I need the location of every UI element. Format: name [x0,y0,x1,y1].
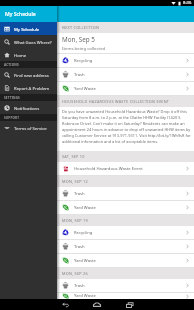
staticText: My Schedule [14,26,40,32]
staticText: SUPPORT [4,116,20,120]
button[interactable]: Find new address [0,68,57,81]
staticText: Trash [74,244,185,250]
staticText: What Goes Where? [14,39,52,45]
staticText: Yard Waste [74,293,185,299]
button[interactable]: Report A Problem [0,81,57,94]
staticText: SETTINGS [4,96,20,100]
staticText: Home [14,52,27,58]
button[interactable]: Back [60,299,71,310]
staticText: Notifications [14,105,40,111]
staticText: Report A Problem [14,85,50,91]
button[interactable]: Home [91,299,102,310]
button[interactable]: Notifications [0,101,57,114]
button[interactable]: Trash [0,279,194,292]
button[interactable]: Yard Waste [0,82,194,95]
staticText: MON, SEP 26 [62,271,88,276]
staticText: Do you have unwanted Household Hazardous… [62,109,191,144]
staticText: Yard Waste [74,205,185,211]
button[interactable]: Terms of Service [0,121,57,134]
staticText: Yard Waste [74,258,185,264]
staticText: ACTIONS [4,63,19,67]
staticText: Terms of Service [14,125,47,131]
staticText: 8:36 [183,0,192,6]
button[interactable]: Yard Waste [0,293,194,299]
staticText: Yard Waste [74,86,185,92]
button[interactable]: Recycling [0,54,194,67]
staticText: Mon, Sep 5 [62,35,95,44]
button[interactable]: Recent apps [124,299,135,310]
staticText: NEXT COLLECTION [62,25,100,30]
staticText: Household Hazardous Waste Event [74,166,185,172]
staticText: Trash [74,191,185,197]
button[interactable]: Yard Waste [0,201,194,214]
staticText: Find new address [14,72,49,78]
staticText: SAT, SEP 10 [62,154,85,159]
staticText: Trash [74,283,185,289]
staticText: Trash [74,72,185,78]
button[interactable]: Yard Waste [0,254,194,267]
button[interactable]: Trash [0,68,194,81]
staticText: My Schedule [5,11,36,18]
staticText: Recycling [74,58,185,64]
staticText: Recycling [74,230,185,236]
staticText: MON, SEP 12 [62,179,88,184]
button[interactable]: Recycling [0,226,194,239]
staticText: HOUSEHOLD HAZARDOUS WASTE COLLECTION EVE… [62,99,170,104]
button[interactable]: Trash [0,240,194,253]
button[interactable]: Household Hazardous Waste Event [0,162,194,175]
staticText: MON, SEP 19 [62,218,88,223]
button[interactable]: Trash [0,187,194,200]
button[interactable]: Home [0,48,57,61]
button[interactable]: My Schedule [0,22,57,35]
staticText: Items being collected [62,45,106,51]
button[interactable]: What Goes Where? [0,35,57,48]
